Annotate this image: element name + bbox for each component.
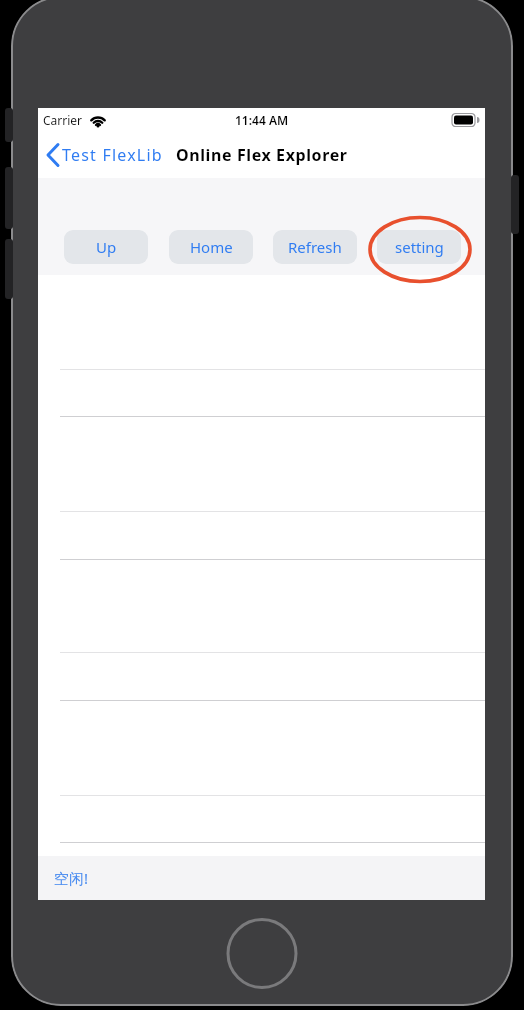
staticText: Online Flex Explorer	[176, 144, 348, 166]
button[interactable]: Up	[64, 230, 148, 264]
staticText: setting	[395, 237, 444, 257]
staticText: Refresh	[288, 237, 342, 257]
staticText: Carrier	[43, 112, 83, 128]
staticText: Test FlexLib	[62, 144, 163, 166]
button[interactable]: setting	[377, 230, 461, 264]
button[interactable]: Home	[169, 230, 253, 264]
staticText: 11:44 AM	[235, 112, 289, 128]
staticText: Up	[96, 237, 117, 257]
button[interactable]: Test FlexLib	[44, 132, 348, 178]
button[interactable]: 空闲!	[54, 868, 89, 888]
button[interactable]: Refresh	[273, 230, 357, 264]
staticText: Home	[190, 237, 233, 257]
